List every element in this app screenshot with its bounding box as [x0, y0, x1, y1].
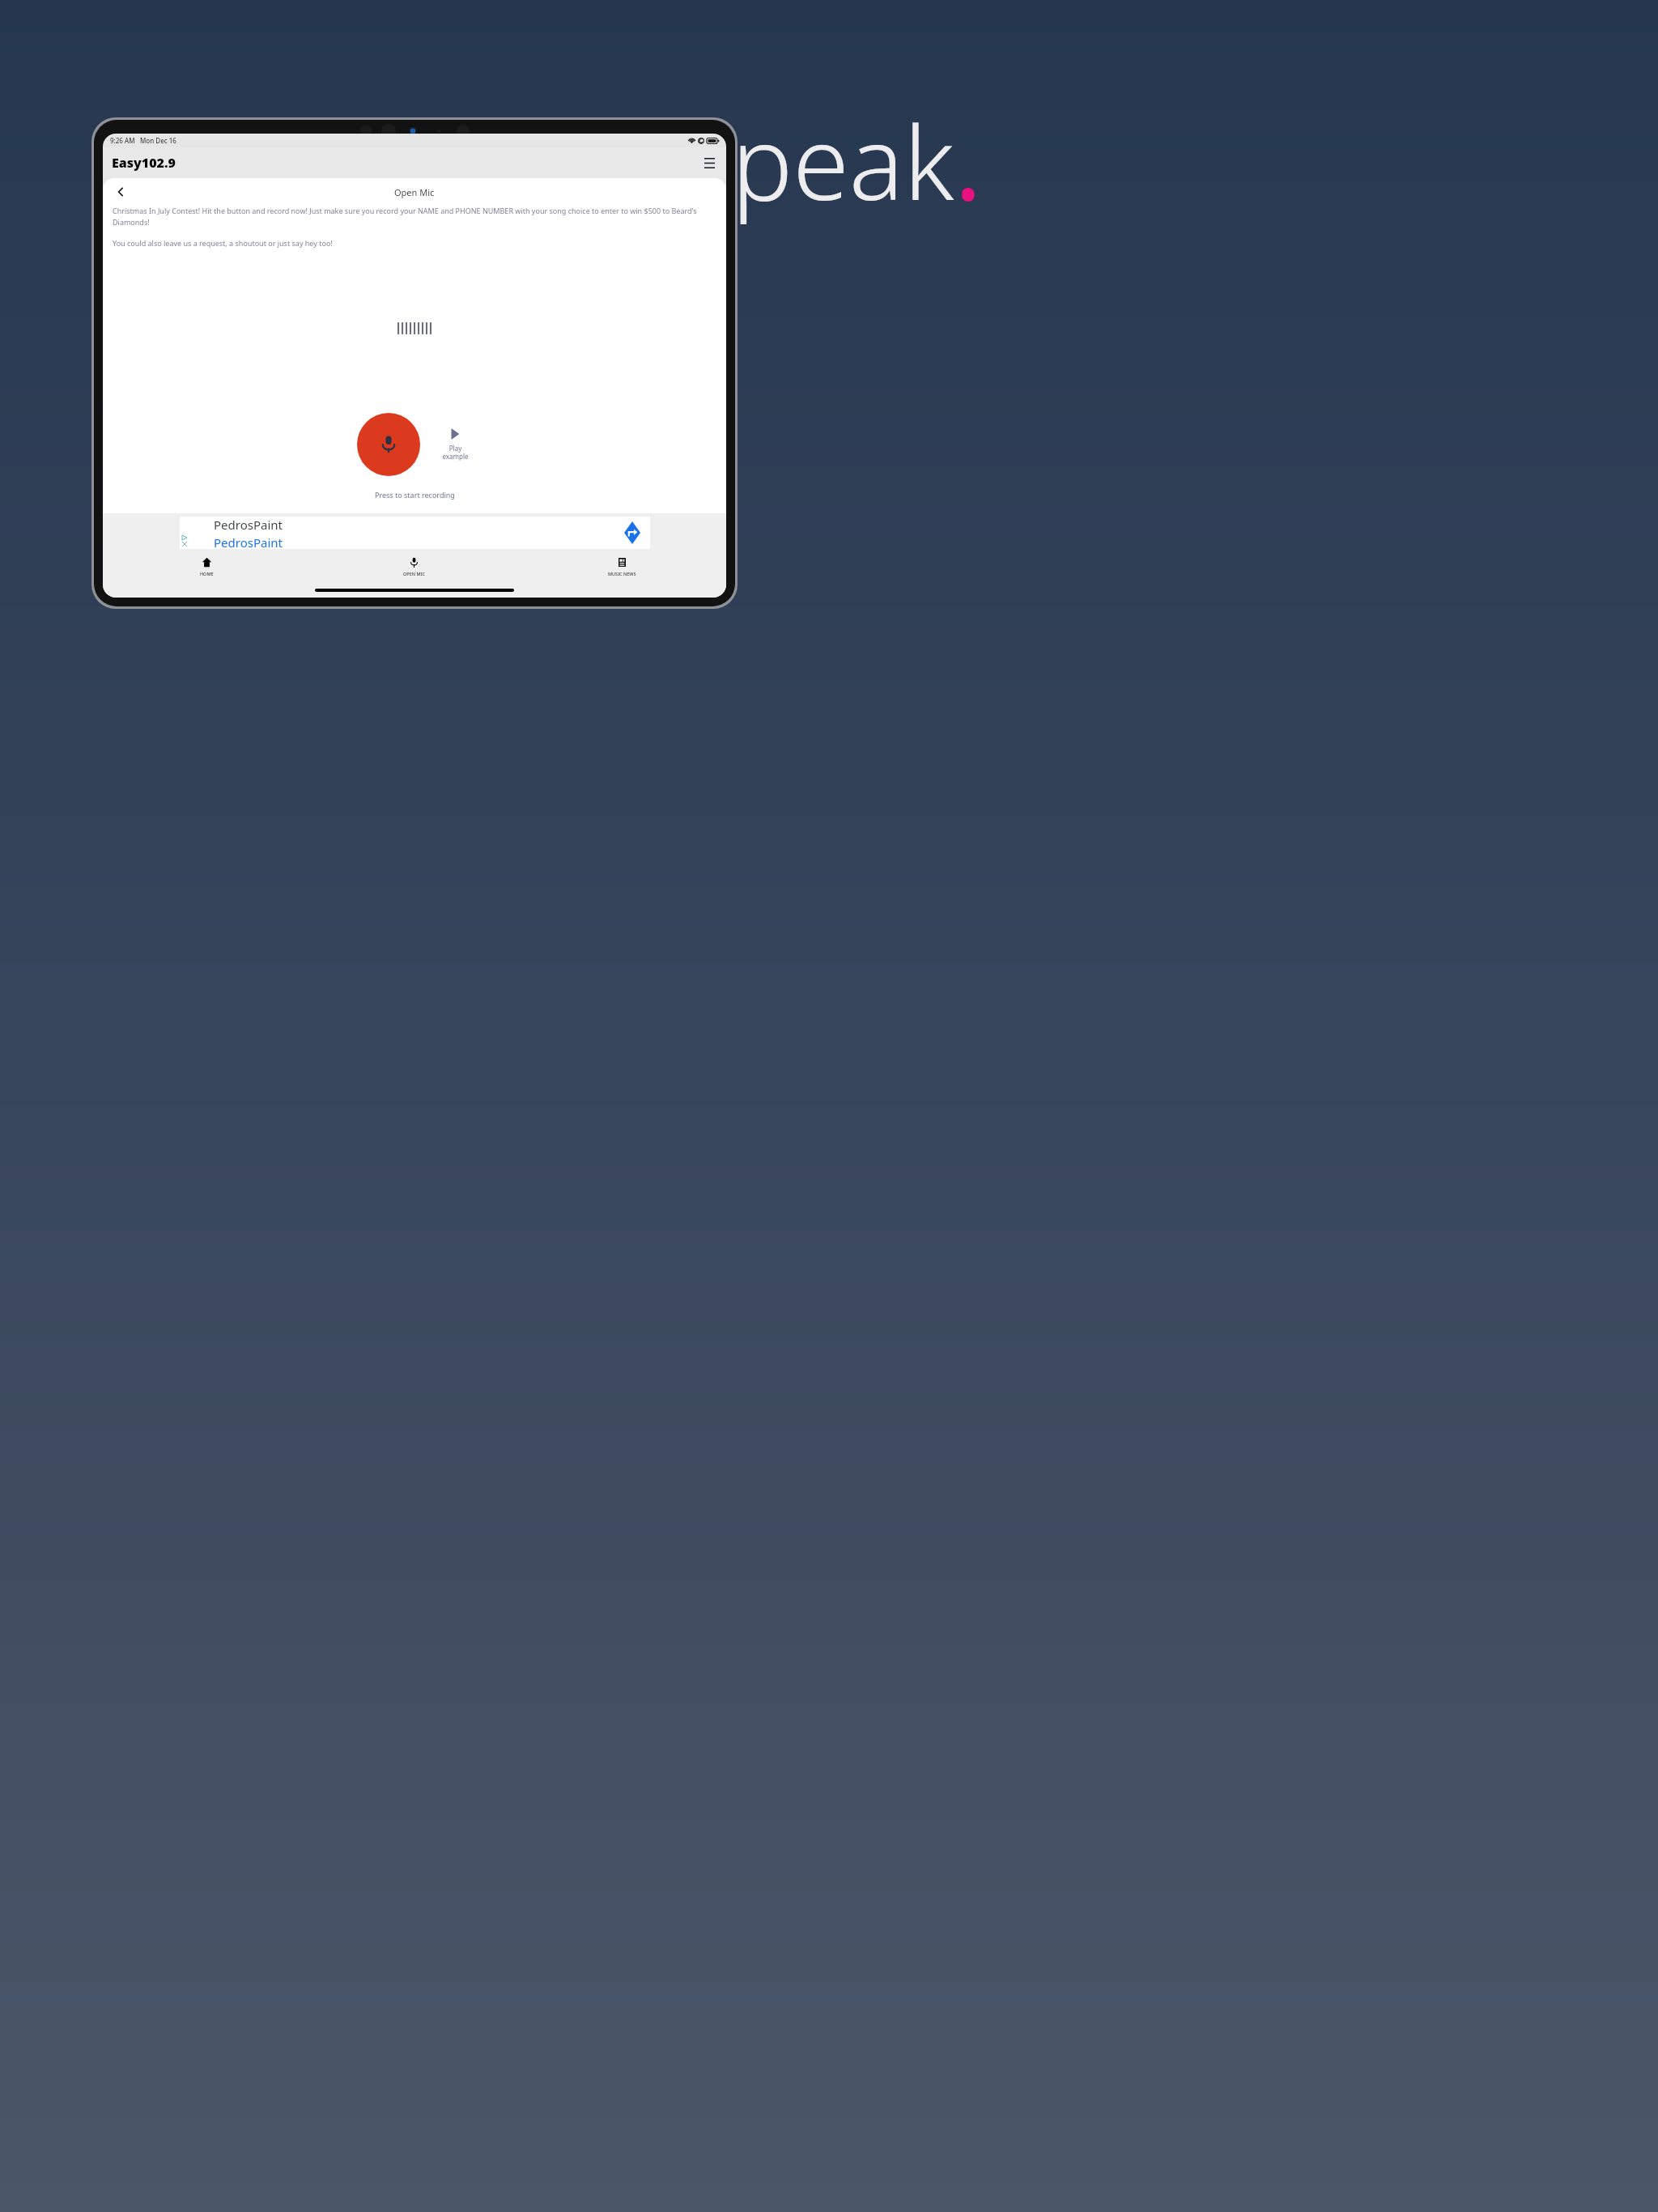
button[interactable]: Record: [357, 413, 420, 476]
button[interactable]: HOME: [103, 551, 310, 582]
button[interactable]: Back: [112, 183, 130, 201]
staticText: PedrosPaint: [214, 534, 283, 549]
staticText: Press to start recording: [375, 490, 455, 500]
staticText: Speak: [676, 91, 954, 230]
staticText: Play example: [442, 444, 469, 461]
staticText: Easy102.9: [112, 154, 176, 172]
staticText: .: [954, 91, 982, 230]
staticText: Christmas In July Contest! Hit the butto…: [113, 206, 716, 228]
staticText: MUSIC NEWS: [608, 571, 636, 576]
button[interactable]: PedrosPaint: [180, 517, 650, 549]
staticText: OPEN MIC: [403, 571, 425, 576]
staticText: 9:26 AM: [110, 136, 135, 145]
staticText: PedrosPaint: [214, 517, 283, 533]
staticText: You could also leave us a request, a sho…: [113, 238, 333, 248]
button[interactable]: OPEN MIC: [310, 551, 518, 582]
button[interactable]: Play example: [438, 428, 472, 461]
button[interactable]: Menu: [701, 155, 717, 171]
button[interactable]: MUSIC NEWS: [518, 551, 726, 582]
staticText: Open Mic: [394, 186, 435, 198]
staticText: HOME: [200, 571, 214, 576]
staticText: Mon Dec 16: [140, 136, 176, 145]
